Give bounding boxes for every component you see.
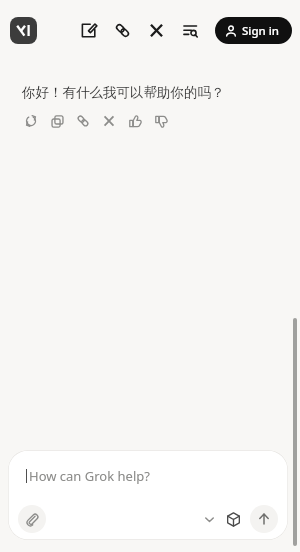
button[interactable]: Share link — [70, 108, 96, 134]
button[interactable]: Send — [250, 505, 278, 533]
button[interactable]: How can Grok help? — [8, 450, 288, 540]
button[interactable]: Bad response — [148, 108, 174, 134]
button[interactable]: Grok home — [10, 17, 37, 44]
button[interactable]: Copy link — [109, 17, 135, 43]
button[interactable]: Sign in — [215, 17, 292, 44]
button[interactable]: Copy — [44, 108, 70, 134]
button[interactable]: Attach file — [18, 505, 46, 533]
button[interactable]: X — [143, 17, 169, 43]
button[interactable]: New chat — [75, 17, 101, 43]
button[interactable]: Search history — [177, 17, 203, 43]
staticText: How can Grok help? — [29, 467, 150, 485]
staticText: Sign in — [242, 23, 280, 39]
button[interactable]: Good response — [122, 108, 148, 134]
button[interactable]: Tools — [221, 507, 245, 531]
button[interactable]: Share on X — [96, 108, 122, 134]
button[interactable]: More options — [199, 509, 219, 529]
staticText: 你好！有什么我可以帮助你的吗？ — [22, 84, 225, 101]
button[interactable]: Regenerate — [18, 108, 44, 134]
